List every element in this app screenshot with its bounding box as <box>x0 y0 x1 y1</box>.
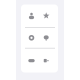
button[interactable] <box>21 49 58 73</box>
button[interactable] <box>21 4 58 27</box>
button[interactable] <box>21 28 58 48</box>
